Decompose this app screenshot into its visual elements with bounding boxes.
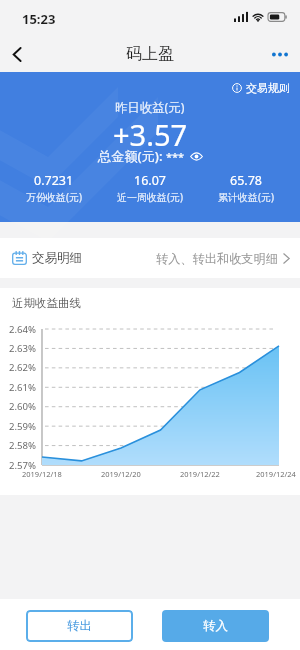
button[interactable]: More options xyxy=(267,41,293,67)
staticText: 万份收益(元) xyxy=(26,190,82,204)
staticText: 近期收益曲线 xyxy=(12,296,81,310)
staticText: 转出 xyxy=(67,618,92,634)
staticText: 转入、转出和收支明细 xyxy=(156,251,278,266)
staticText: 16.07 xyxy=(134,172,166,189)
button[interactable]: Toggle amount visibility xyxy=(190,152,203,161)
staticText: 转入 xyxy=(203,618,228,634)
staticText: 码上盈 xyxy=(126,44,174,64)
staticText: 近一周收益(元) xyxy=(117,190,183,204)
staticText: 交易明细 xyxy=(32,250,82,266)
button[interactable]: 交易明细 xyxy=(0,238,300,278)
button[interactable]: 交易规则 xyxy=(232,81,290,95)
button[interactable]: Back xyxy=(0,37,34,71)
staticText: 昨日收益(元) xyxy=(115,99,185,116)
staticText: *** xyxy=(166,149,185,164)
staticText: 交易规则 xyxy=(246,81,290,95)
staticText: 0.7231 xyxy=(34,172,74,189)
staticText: 65.78 xyxy=(230,172,262,189)
staticText: 15:23 xyxy=(22,10,56,28)
staticText: +3.57 xyxy=(113,115,188,154)
button[interactable]: 转入 xyxy=(162,610,269,642)
button[interactable]: 转出 xyxy=(26,610,133,642)
staticText: 总金额(元): xyxy=(98,147,163,165)
staticText: 累计收益(元) xyxy=(218,190,274,204)
